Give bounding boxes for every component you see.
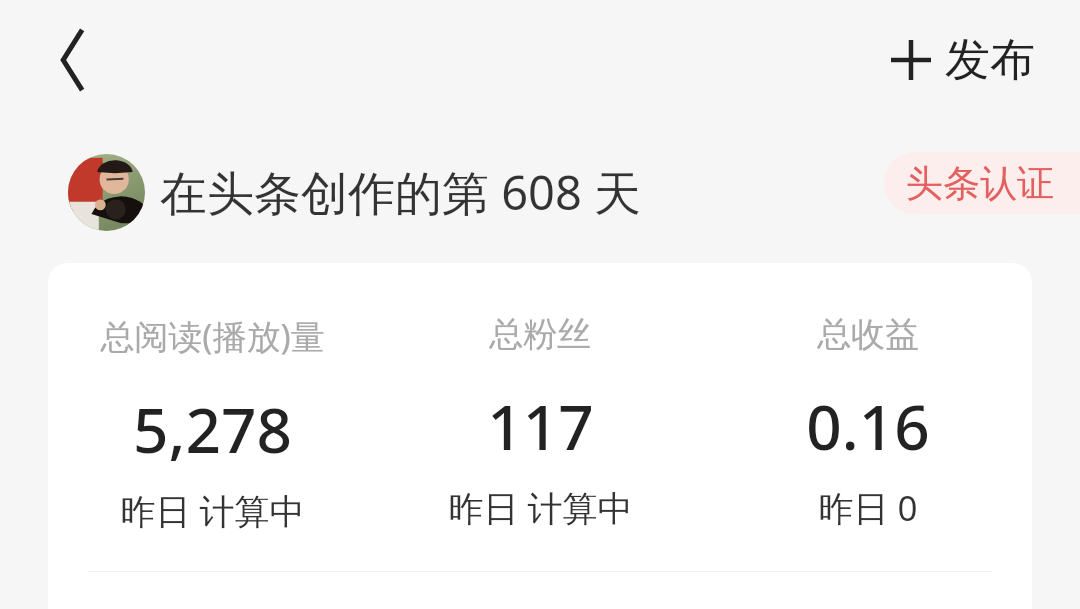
staticText: 昨日 计算中 (120, 487, 305, 535)
button[interactable]: 头条认证 (884, 152, 1080, 214)
staticText: 昨日 计算中 (448, 484, 633, 532)
staticText: 昨日 0 (818, 484, 918, 532)
button[interactable]: Back (28, 16, 116, 104)
staticText: 117 (487, 384, 594, 468)
button[interactable]: 发布 (884, 18, 1041, 102)
button[interactable]: 总阅读(播放)量 (48, 263, 376, 535)
staticText: 在头条创作的第 608 天 (160, 160, 642, 224)
staticText: 发布 (945, 32, 1035, 89)
button[interactable]: 在头条创作的第 608 天 (160, 150, 642, 234)
staticText: 总收益 (817, 313, 919, 356)
staticText: 头条认证 (906, 160, 1054, 207)
button[interactable]: 总收益 (704, 263, 1032, 532)
button[interactable]: Profile photo (68, 154, 145, 231)
staticText: 0.16 (806, 384, 930, 468)
staticText: 5,278 (133, 387, 292, 471)
staticText: 总阅读(播放)量 (100, 313, 325, 359)
button[interactable]: 总粉丝 (376, 263, 704, 532)
staticText: 总粉丝 (489, 313, 591, 356)
